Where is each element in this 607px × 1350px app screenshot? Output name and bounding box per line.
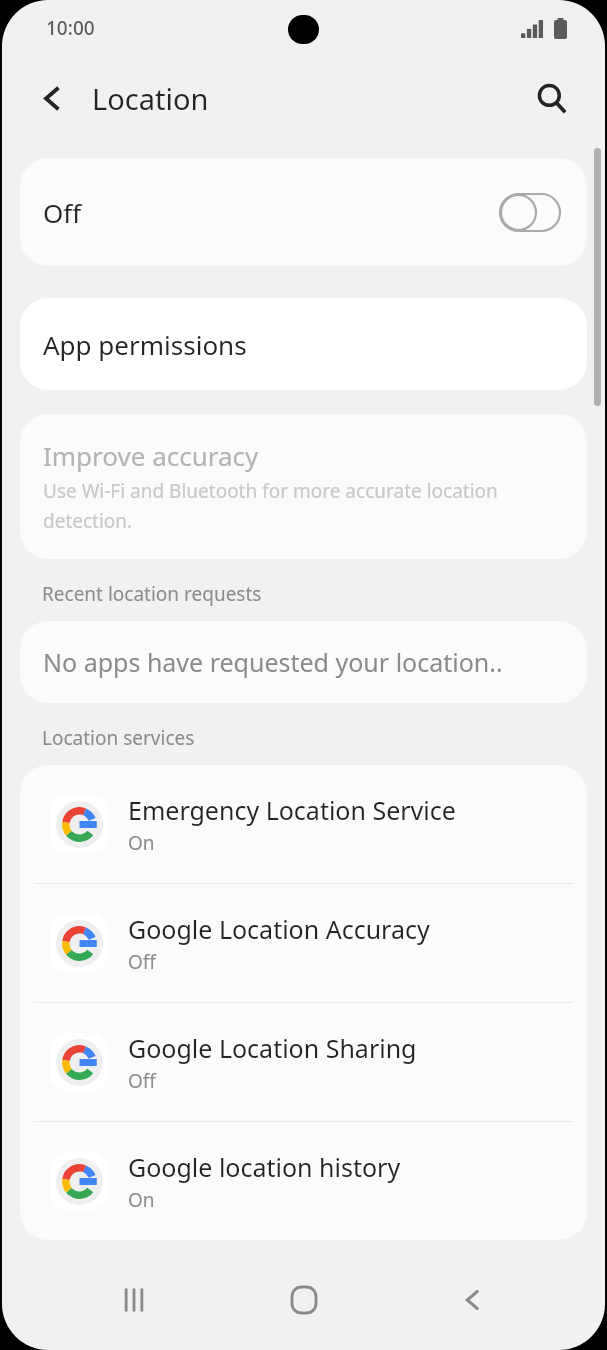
staticText: Off (128, 949, 156, 975)
staticText: On (128, 830, 155, 856)
button[interactable]: Off (20, 158, 587, 266)
button[interactable]: Google location history (20, 1122, 587, 1240)
staticText: Off (43, 195, 82, 230)
button[interactable]: Emergency Location Service (20, 765, 587, 883)
button[interactable]: Home (267, 1263, 341, 1337)
staticText: On (128, 1187, 155, 1213)
button[interactable]: App permissions (20, 298, 587, 390)
button[interactable]: Google Location Sharing (20, 1003, 587, 1121)
staticText: No apps have requested your location.. (43, 645, 503, 679)
staticText: Location services (42, 725, 195, 751)
staticText: Recent location requests (42, 581, 262, 607)
staticText: Google Location Sharing (128, 1031, 417, 1065)
button[interactable]: Back (436, 1263, 510, 1337)
staticText: Location (92, 79, 209, 118)
button[interactable]: Navigate up (24, 70, 80, 126)
staticText: Emergency Location Service (128, 793, 456, 827)
button[interactable]: Google Location Accuracy (20, 884, 587, 1002)
staticText: Off (128, 1068, 156, 1094)
button[interactable]: Search (523, 70, 579, 126)
button[interactable]: No apps have requested your location.. (20, 621, 587, 703)
staticText: 10:00 (46, 15, 95, 41)
staticText: App permissions (43, 327, 247, 362)
staticText: Use Wi-Fi and Bluetooth for more accurat… (43, 478, 565, 533)
staticText: Improve accuracy (43, 438, 259, 473)
button[interactable]: Improve accuracy (20, 414, 587, 559)
button[interactable]: Recent apps (97, 1263, 171, 1337)
staticText: Google location history (128, 1150, 401, 1184)
staticText: Google Location Accuracy (128, 912, 430, 946)
